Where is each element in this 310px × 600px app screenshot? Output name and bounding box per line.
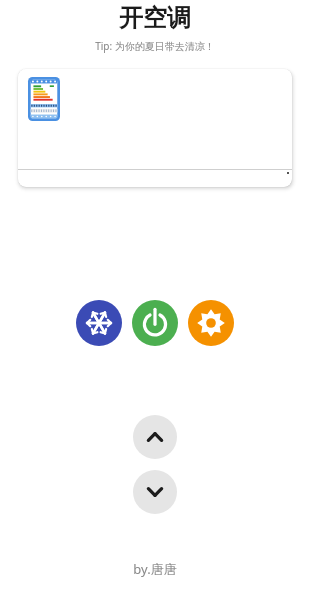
button[interactable]: Temperature up xyxy=(133,415,177,459)
staticText: 开空调 xyxy=(119,3,191,33)
button[interactable]: Heat mode xyxy=(188,300,234,346)
button[interactable] xyxy=(18,69,292,187)
button[interactable]: Power xyxy=(132,300,178,346)
staticText: Tip: 为你的夏日带去清凉！ xyxy=(95,39,215,53)
button[interactable]: Temperature down xyxy=(133,470,177,514)
button[interactable]: Cool mode xyxy=(76,300,122,346)
staticText: by.唐唐 xyxy=(133,560,177,578)
